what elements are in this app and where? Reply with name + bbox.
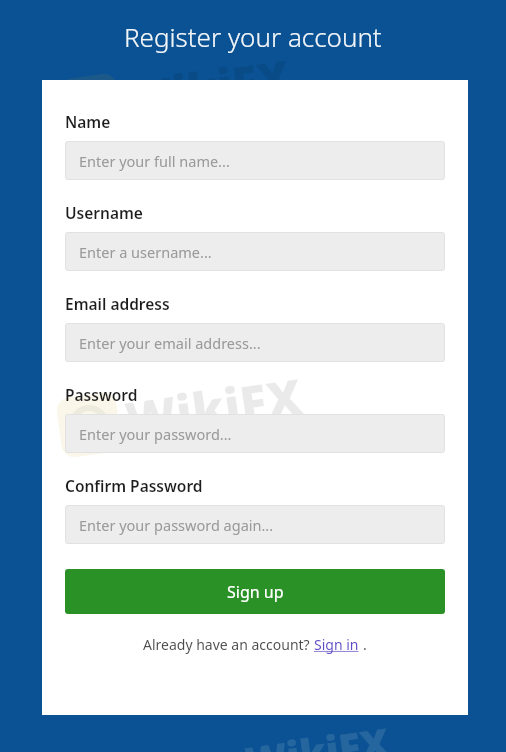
staticText: Email address [65,293,170,314]
staticText: WikiFX [242,714,393,752]
staticText: Confirm Password [65,475,203,496]
staticText: Enter your password... [79,424,232,444]
staticText: WikiFX [121,361,306,452]
button[interactable]: Enter your full name... [65,141,445,180]
staticText: Name [65,111,111,132]
staticText: Register your account [124,19,382,54]
staticText: . [363,635,367,654]
button[interactable]: Sign up [65,569,445,614]
staticText: Password [65,384,138,405]
staticText: WikiFX [121,44,294,130]
staticText: Enter a username... [79,242,212,262]
staticText: Enter your password again... [79,515,274,535]
staticText: Already have an account? [143,635,314,654]
staticText: Username [65,202,143,223]
staticText: Enter your full name... [79,151,230,171]
staticText: Sign up [227,581,284,603]
staticText: Sign in [314,635,363,654]
button[interactable]: Enter your email address... [65,323,445,362]
button[interactable]: Sign in [314,635,363,654]
button[interactable]: Enter your password again... [65,505,445,544]
button[interactable]: Enter your password... [65,414,445,453]
staticText: Enter your email address... [79,333,261,353]
button[interactable]: Enter a username... [65,232,445,271]
